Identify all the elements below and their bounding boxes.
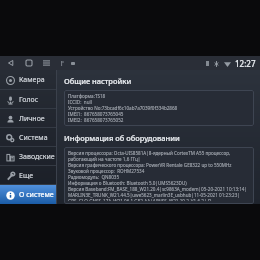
- staticText: Заводские: [19, 152, 55, 162]
- button[interactable]: Заводские: [0, 147, 57, 166]
- staticText: Общие настройки: [64, 76, 132, 86]
- staticText: Голос: [19, 95, 39, 105]
- staticText: Версия Baseband:FM_BASE_188_W21.20.4|sc9…: [68, 186, 250, 192]
- button[interactable]: О системе: [0, 185, 57, 204]
- button[interactable]: Система: [0, 128, 57, 147]
- staticText: Устройство No:73bcadf6c10ab7a7039f0f334b…: [68, 105, 250, 111]
- staticText: О системе: [19, 190, 54, 200]
- staticText: MARLIN3E_TRUNK_W21.44.5|uwe5623_marlin3E…: [68, 192, 250, 198]
- staticText: ICCID: null: [68, 99, 250, 105]
- button[interactable]: Home: [22, 56, 35, 70]
- button[interactable]: Камера: [0, 70, 57, 90]
- staticText: Платформа:TS18: [68, 93, 250, 99]
- button[interactable]: Еще: [0, 166, 57, 185]
- staticText: GPS_GLO GNSS_17A_W21.06.1 GE2-AA|A0NSS_W…: [68, 198, 250, 201]
- button[interactable]: Голос: [0, 90, 57, 109]
- staticText: Радиомодуль: QN8035: [68, 174, 250, 180]
- staticText: Звуковой процессор: ROHM27534: [68, 168, 250, 174]
- staticText: 12:27: [235, 58, 256, 69]
- staticText: Информация об оборудовании: [64, 133, 180, 143]
- staticText: Система: [19, 133, 48, 143]
- button[interactable]: Recent apps: [40, 56, 53, 70]
- staticText: Камера: [19, 75, 45, 85]
- staticText: IMEI2: 867658073765052: [68, 117, 250, 123]
- staticText: IMEI1: 867658073765045: [68, 111, 250, 117]
- staticText: Версия графического процессора: PowerVR …: [68, 162, 250, 168]
- button[interactable]: Back: [4, 56, 17, 70]
- staticText: Личное: [19, 114, 45, 124]
- staticText: Еще: [19, 171, 34, 181]
- staticText: Информация о Bluetooth: Bluetooth 5.0|UM…: [68, 180, 250, 186]
- button[interactable]: Личное: [0, 109, 57, 128]
- staticText: работающий на частоте 1,6 ГГц|: [68, 156, 250, 162]
- staticText: Версия процессора: Octa-UIS8581A|8-ядерн…: [68, 150, 250, 156]
